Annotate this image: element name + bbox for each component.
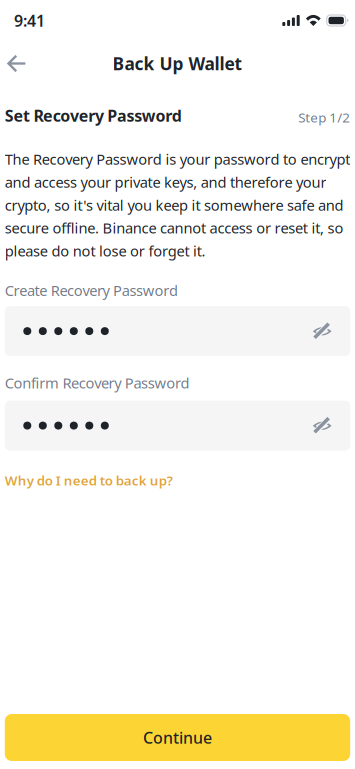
button[interactable]: Show password [300,402,332,450]
button[interactable]: Continue [5,714,350,761]
button[interactable]: Why do I need to back up? [5,469,173,492]
staticText: Step 1/2 [298,108,350,126]
staticText: crypto, so it's vital you keep it somewh… [5,195,344,215]
button[interactable]: Show password [300,307,332,355]
staticText: Why do I need to back up? [5,472,173,489]
button[interactable]: Back [0,43,38,83]
staticText: Create Recovery Password [5,281,178,300]
staticText: Back Up Wallet [112,52,242,75]
staticText: secure offline. Binance cannot access or… [5,218,343,238]
staticText: Set Recovery Password [5,105,182,126]
staticText: Confirm Recovery Password [5,373,190,393]
staticText: 9:41 [14,10,45,31]
staticText: The Recovery Password is your password t… [5,149,350,169]
staticText: and access your private keys, and theref… [5,172,326,192]
staticText: Continue [143,727,212,748]
staticText: please do not lose or forget it. [5,241,206,261]
